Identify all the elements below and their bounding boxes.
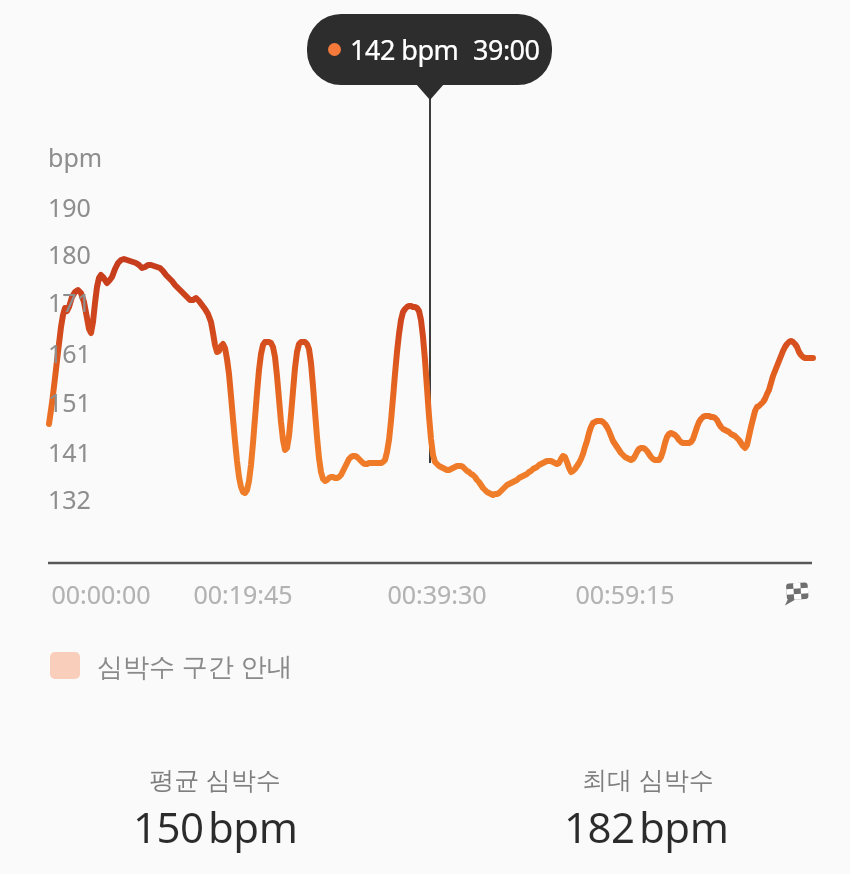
staticText: 00:59:15 [575,577,675,609]
staticText: 00:39:30 [387,577,487,609]
staticText: 182 [564,798,635,855]
staticText: 00:19:45 [193,577,293,609]
staticText: 평균 심박수 [149,762,281,796]
staticText: 심박수 구간 안내 [97,648,293,684]
staticText: 39:00 [473,31,540,68]
staticText: bpm [208,798,298,855]
staticText: 190 [48,190,91,224]
staticText: 00:00:00 [51,577,151,609]
staticText: 171 [48,285,91,319]
staticText: bpm [48,140,103,174]
button[interactable]: 142 bpm [313,14,554,85]
staticText: 161 [48,336,91,370]
staticText: 142 bpm [350,31,459,68]
staticText: bpm [639,798,729,855]
staticText: 180 [48,237,91,271]
staticText: 141 [48,435,91,469]
staticText: 132 [48,482,91,516]
button[interactable] [50,648,330,682]
staticText: 151 [48,385,91,419]
staticText: 최대 심박수 [582,762,714,796]
staticText: 150 [133,798,204,855]
